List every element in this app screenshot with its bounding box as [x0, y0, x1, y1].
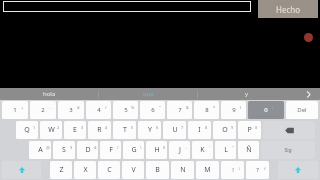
staticText: A — [38, 145, 43, 155]
button[interactable]: D — [77, 141, 98, 159]
staticText: 1 — [13, 106, 17, 114]
staticText: ) — [272, 105, 274, 110]
staticText: S — [62, 145, 66, 155]
button[interactable]: Shift — [2, 161, 41, 179]
staticText: 3 — [81, 125, 84, 130]
button[interactable]: W — [40, 121, 62, 139]
staticText: W — [48, 125, 55, 135]
staticText: ! — [232, 166, 234, 174]
staticText: 2 — [41, 106, 45, 114]
button[interactable]: J — [169, 141, 190, 159]
button[interactable]: U — [163, 121, 186, 139]
button[interactable] — [3, 1, 251, 12]
button[interactable]: E — [64, 121, 86, 139]
staticText: ¡ — [239, 165, 241, 170]
button[interactable]: B — [146, 161, 169, 179]
button[interactable]: O — [213, 121, 236, 139]
staticText: Q — [24, 125, 30, 135]
staticText: Y — [148, 125, 152, 135]
button[interactable]: More suggestions — [296, 88, 320, 100]
button[interactable]: 7 — [167, 101, 192, 119]
button[interactable]: Shift right — [278, 161, 318, 179]
staticText: B — [155, 165, 160, 175]
button[interactable]: C — [98, 161, 120, 179]
button[interactable]: Ñ — [238, 141, 259, 159]
staticText: 4 — [97, 106, 101, 114]
button[interactable]: que — [99, 88, 197, 100]
button[interactable]: G — [123, 141, 144, 159]
button[interactable]: T — [113, 121, 136, 139]
button[interactable]: Hecho — [258, 0, 318, 18]
button[interactable]: 1 — [2, 101, 28, 119]
button[interactable]: L — [215, 141, 236, 159]
button[interactable]: 4 — [86, 101, 111, 119]
button[interactable]: Y — [138, 121, 161, 139]
button[interactable]: 6 — [140, 101, 165, 119]
staticText: % — [131, 105, 135, 110]
staticText: F — [109, 145, 113, 155]
staticText: ¿ — [264, 165, 266, 170]
button[interactable]: ! — [221, 161, 244, 179]
staticText: " — [159, 105, 161, 110]
staticText: Ñ — [246, 145, 252, 155]
staticText: 5 — [131, 125, 134, 130]
staticText: + — [21, 105, 24, 110]
staticText: J — [179, 145, 181, 155]
button[interactable]: Sig — [261, 141, 315, 159]
staticText: I — [198, 125, 201, 135]
button[interactable]: Backspace — [263, 121, 315, 139]
staticText: ? — [256, 166, 259, 174]
button[interactable]: K — [192, 141, 213, 159]
button[interactable]: H — [146, 141, 167, 159]
button[interactable]: I — [188, 121, 211, 139]
staticText: * — [213, 105, 216, 110]
staticText: G — [131, 145, 137, 155]
button[interactable]: N — [171, 161, 194, 179]
button[interactable]: hola — [0, 88, 98, 100]
staticText: U — [172, 125, 178, 135]
button[interactable]: S — [53, 141, 75, 159]
button[interactable]: V — [122, 161, 144, 179]
button[interactable]: R — [88, 121, 111, 139]
staticText: 0 — [264, 106, 268, 114]
staticText: T — [123, 125, 127, 135]
staticText: @ — [46, 145, 50, 150]
staticText: 7 — [178, 106, 182, 114]
staticText: \ — [140, 145, 142, 150]
staticText: V — [131, 165, 136, 175]
staticText: 9 — [231, 125, 234, 130]
button[interactable]: 5 — [113, 101, 138, 119]
staticText: # — [94, 145, 97, 150]
button[interactable]: P — [238, 121, 261, 139]
button[interactable]: y — [198, 88, 296, 100]
staticText: / — [105, 105, 107, 110]
button[interactable]: Q — [16, 121, 38, 139]
button[interactable]: 0 — [248, 101, 284, 119]
staticText: 4 — [105, 125, 108, 130]
staticText: 6 — [156, 125, 159, 130]
staticText: Sig — [284, 147, 292, 154]
staticText: " — [232, 145, 234, 150]
staticText: 7 — [181, 125, 184, 130]
button[interactable]: Notification — [304, 33, 313, 42]
staticText: Del — [297, 106, 307, 114]
button[interactable]: 3 — [58, 101, 84, 119]
button[interactable]: F — [100, 141, 121, 159]
staticText: 3 — [69, 106, 73, 114]
staticText: ( — [240, 105, 242, 110]
button[interactable]: X — [74, 161, 96, 179]
staticText: E — [73, 125, 77, 135]
button[interactable]: 8 — [194, 101, 219, 119]
button[interactable]: Del — [286, 101, 318, 119]
button[interactable]: Z — [50, 161, 72, 179]
button[interactable]: 9 — [221, 101, 246, 119]
staticText: C — [107, 165, 112, 175]
button[interactable]: 2 — [30, 101, 56, 119]
staticText: D — [85, 145, 91, 155]
button[interactable]: M — [196, 161, 219, 179]
staticText: K — [200, 145, 205, 155]
button[interactable]: A — [29, 141, 51, 159]
staticText: 5 — [124, 106, 128, 114]
staticText: - — [49, 105, 51, 110]
button[interactable]: ? — [246, 161, 269, 179]
